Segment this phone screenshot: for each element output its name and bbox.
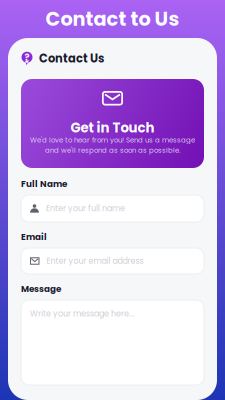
button[interactable]: ?: [8, 38, 217, 79]
staticText: Contact Us: [39, 50, 104, 67]
staticText: Get in Touch: [70, 118, 154, 137]
staticText: Enter your full name: [46, 203, 125, 214]
staticText: Contact to Us: [45, 5, 179, 33]
button[interactable]: Enter your full name: [21, 195, 204, 222]
staticText: Email: [21, 231, 47, 243]
staticText: Full Name: [21, 178, 67, 190]
staticText: Message: [21, 283, 61, 295]
staticText: ?: [24, 51, 29, 64]
staticText: We'd love to hear from you! Send us a me…: [30, 135, 195, 145]
staticText: and we'll respond as soon as possible.: [45, 145, 180, 155]
button[interactable]: Write your message here...: [21, 300, 204, 385]
staticText: Enter your email address: [46, 255, 143, 267]
staticText: Write your message here...: [30, 308, 135, 319]
button[interactable]: Enter your email address: [21, 248, 204, 274]
